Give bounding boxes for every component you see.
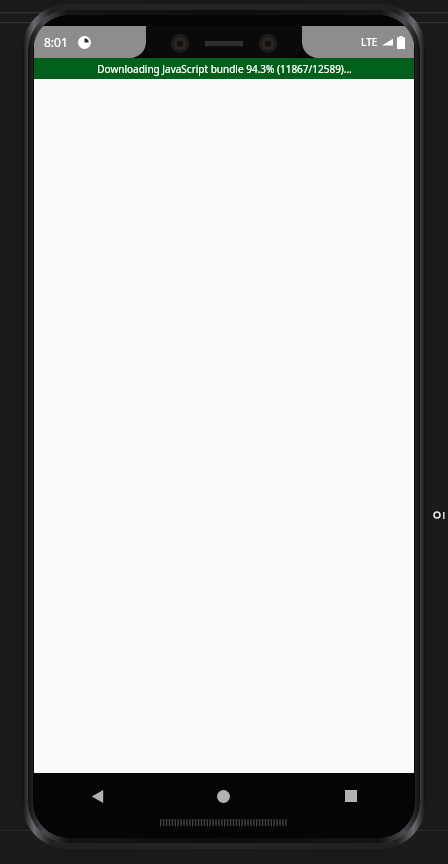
- button[interactable]: Downloading JavaScript bundle 94.3% (118…: [34, 58, 414, 79]
- staticText: LTE: [361, 35, 378, 49]
- staticText: 8:01: [44, 34, 68, 50]
- button[interactable]: Home: [160, 773, 287, 819]
- button[interactable]: Recent apps: [287, 773, 414, 819]
- staticText: Downloading JavaScript bundle 94.3% (118…: [97, 62, 352, 76]
- button[interactable]: Back: [34, 773, 160, 819]
